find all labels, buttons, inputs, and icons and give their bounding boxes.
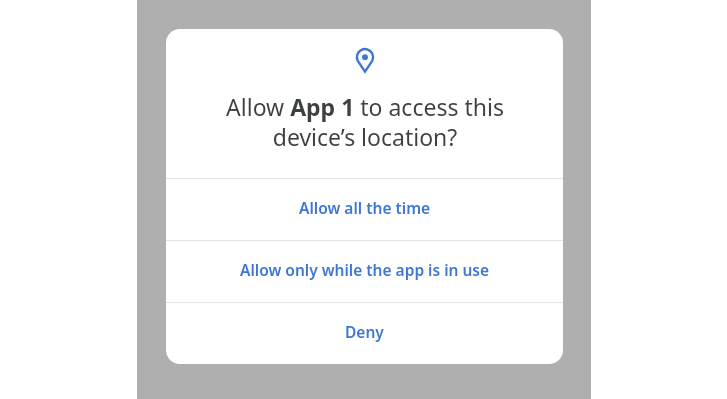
staticText: Allow all the time <box>299 197 431 218</box>
staticText: Allow App 1 to access this device’s loca… <box>226 91 504 152</box>
staticText: Allow only while the app is in use <box>240 259 490 280</box>
button[interactable]: Deny <box>166 303 563 364</box>
button[interactable]: Allow all the time <box>166 179 563 240</box>
staticText: Deny <box>345 321 384 342</box>
button[interactable]: Allow only while the app is in use <box>166 241 563 302</box>
